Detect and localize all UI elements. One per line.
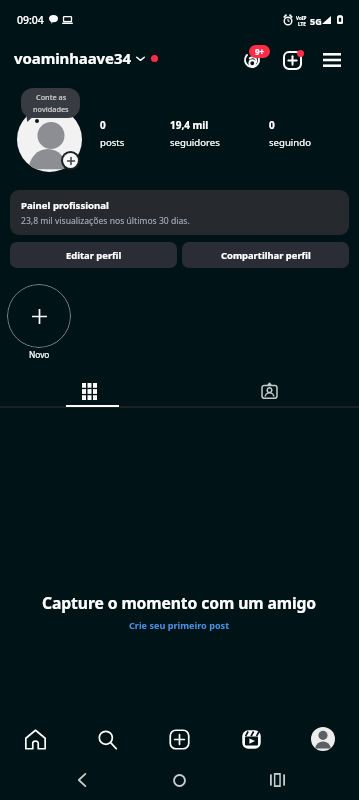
button[interactable]: Search <box>71 717 143 761</box>
staticText: 5G <box>310 15 322 27</box>
staticText: posts <box>100 136 125 149</box>
staticText: Conte as <box>36 92 67 102</box>
button[interactable]: New highlight <box>7 284 71 348</box>
staticText: 23,8 mil visualizações nos últimos 30 di… <box>21 215 190 227</box>
staticText: voaminhaave34 <box>14 48 131 68</box>
staticText: Editar perfil <box>66 249 122 262</box>
button[interactable]: Menu <box>314 44 348 76</box>
button[interactable] <box>17 107 82 172</box>
button[interactable]: Profile <box>287 717 359 761</box>
staticText: 19,4 mil <box>170 118 209 132</box>
button[interactable]: Back <box>62 760 102 800</box>
staticText: LTE <box>298 21 306 27</box>
staticText: novidades <box>33 104 69 114</box>
button[interactable]: Painel profissional <box>10 190 349 235</box>
button[interactable]: Editar perfil <box>10 242 177 268</box>
button[interactable]: Threads <box>241 48 267 74</box>
staticText: 0 <box>269 118 275 132</box>
staticText: VoIP <box>296 15 307 21</box>
staticText: Novo <box>29 349 50 360</box>
button[interactable]: Recent apps <box>257 760 297 800</box>
button[interactable]: Tagged photos <box>179 376 359 406</box>
button[interactable]: New post <box>282 50 303 71</box>
button[interactable]: Home <box>159 760 199 800</box>
staticText: seguidores <box>170 136 220 149</box>
button[interactable]: Create <box>143 717 215 761</box>
button[interactable]: Crie seu primeiro post <box>125 617 234 633</box>
staticText: Crie seu primeiro post <box>129 619 230 631</box>
button[interactable]: Add to story <box>63 153 78 168</box>
staticText: 09:04 <box>17 13 44 27</box>
button[interactable]: Reels <box>215 717 287 761</box>
button[interactable]: Compartilhar perfil <box>182 242 349 268</box>
button[interactable]: voaminhaave34 <box>14 48 158 68</box>
staticText: 9+ <box>255 46 265 57</box>
staticText: seguindo <box>269 136 311 149</box>
staticText: 0 <box>100 118 106 132</box>
staticText: Painel profissional <box>21 199 109 212</box>
staticText: Capture o momento com um amigo <box>42 592 317 613</box>
button[interactable]: Posts grid <box>0 376 179 406</box>
button[interactable]: Home <box>0 717 71 761</box>
staticText: Compartilhar perfil <box>221 249 311 262</box>
